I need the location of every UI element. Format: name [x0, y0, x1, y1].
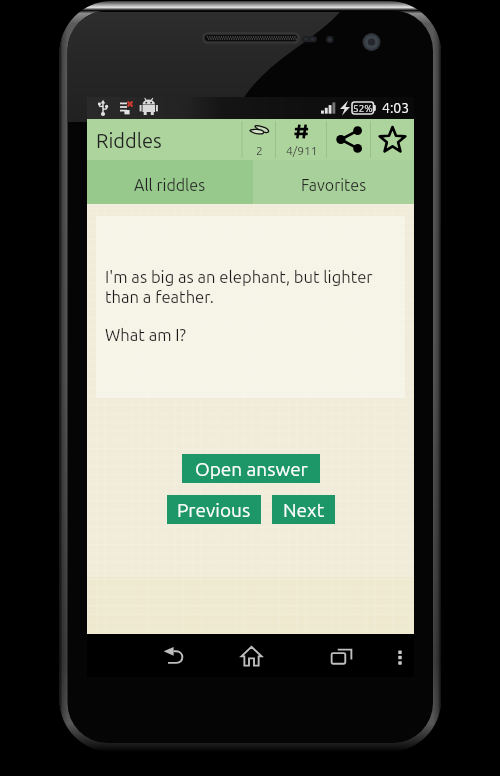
- staticText: Favorites: [301, 176, 367, 194]
- staticText: All riddles: [134, 176, 206, 194]
- button[interactable]: Add to favourites: [371, 119, 414, 160]
- button[interactable]: Recent apps: [296, 634, 386, 677]
- button[interactable]: Open answer: [182, 454, 320, 483]
- button[interactable]: Share: [327, 119, 371, 160]
- staticText: Open answer: [195, 458, 308, 479]
- staticText: Next: [283, 499, 325, 520]
- button[interactable]: Back: [115, 634, 232, 677]
- button[interactable]: More options: [386, 634, 414, 677]
- staticText: Previous: [177, 499, 251, 520]
- button[interactable]: Previous: [167, 495, 261, 524]
- staticText: I'm as big as an elephant, but lighter t…: [105, 268, 373, 344]
- button[interactable]: All riddles: [87, 160, 253, 204]
- button[interactable]: Riddle index: [276, 119, 327, 160]
- button[interactable]: Home: [206, 634, 296, 677]
- staticText: Riddles: [96, 129, 162, 151]
- button[interactable]: Favorites: [253, 160, 414, 204]
- button[interactable]: Sleep mode: [243, 119, 276, 160]
- staticText: 2: [256, 144, 263, 157]
- staticText: 4/911: [286, 144, 318, 157]
- staticText: 52%: [353, 103, 373, 114]
- button[interactable]: Next: [272, 495, 335, 524]
- staticText: 4:03: [382, 100, 410, 116]
